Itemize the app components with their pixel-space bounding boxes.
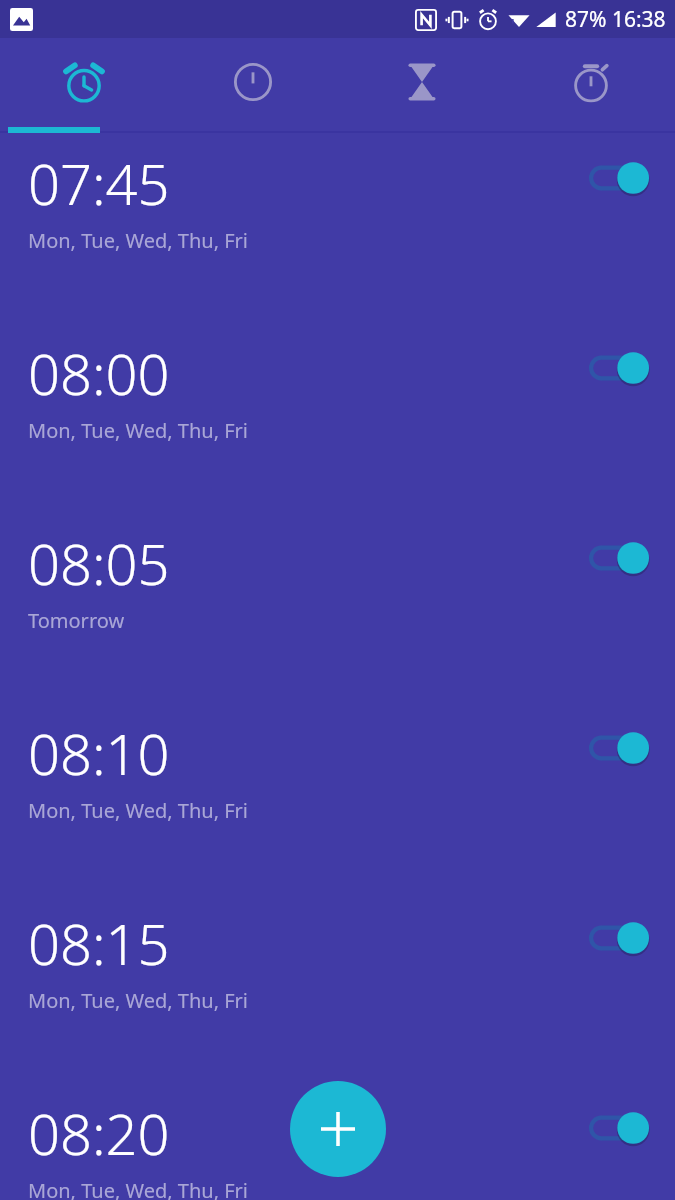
- staticText: Mon, Tue, Wed, Thu, Fri: [28, 417, 249, 444]
- staticText: 87% 16:38: [565, 5, 666, 34]
- button[interactable]: Toggle alarm 07:45: [583, 155, 655, 201]
- button[interactable]: Timer: [337, 38, 506, 133]
- staticText: 08:05: [28, 525, 170, 601]
- button[interactable]: Toggle alarm 08:05: [583, 535, 655, 581]
- button[interactable]: Toggle alarm 08:15: [583, 915, 655, 961]
- button[interactable]: Add alarm: [290, 1081, 386, 1177]
- staticText: 08:10: [28, 715, 170, 791]
- button[interactable]: 08:15: [0, 893, 675, 1083]
- staticText: Mon, Tue, Wed, Thu, Fri: [28, 227, 249, 254]
- staticText: 08:00: [28, 335, 170, 411]
- button[interactable]: Toggle alarm 08:20: [583, 1105, 655, 1151]
- staticText: 07:45: [28, 145, 170, 221]
- staticText: 08:20: [28, 1095, 170, 1171]
- button[interactable]: Toggle alarm 08:00: [583, 345, 655, 391]
- button[interactable]: 08:20: [0, 1083, 675, 1200]
- staticText: Mon, Tue, Wed, Thu, Fri: [28, 1177, 249, 1200]
- button[interactable]: Toggle alarm 08:10: [583, 725, 655, 771]
- button[interactable]: Stopwatch: [506, 38, 675, 133]
- button[interactable]: 08:05: [0, 513, 675, 703]
- staticText: 08:15: [28, 905, 170, 981]
- staticText: Tomorrow: [28, 607, 125, 634]
- staticText: Mon, Tue, Wed, Thu, Fri: [28, 797, 249, 824]
- staticText: Mon, Tue, Wed, Thu, Fri: [28, 987, 249, 1014]
- button[interactable]: Clock: [168, 38, 337, 133]
- button[interactable]: 08:10: [0, 703, 675, 893]
- button[interactable]: 08:00: [0, 323, 675, 513]
- button[interactable]: Alarm: [0, 38, 168, 133]
- button[interactable]: 07:45: [0, 133, 675, 323]
